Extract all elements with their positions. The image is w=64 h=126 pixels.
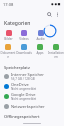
staticText: Audio: [36, 37, 45, 41]
staticText: Installationen: [48, 51, 64, 59]
button[interactable]: Installationen: [48, 44, 64, 59]
staticText: Nicht angemeldet: [11, 97, 37, 101]
staticText: Apps: [36, 51, 44, 55]
button[interactable]: Dokumente: [0, 44, 16, 59]
staticText: Interner Speicher: [11, 72, 44, 77]
button[interactable]: Downloads: [16, 44, 32, 55]
staticText: Dokumente: [0, 51, 16, 59]
staticText: Google Drive: [11, 92, 36, 97]
staticText: Netzwerkspeicher: [11, 104, 45, 109]
staticText: Offlinegespeichert: [4, 114, 40, 119]
button[interactable]: Bilder: [0, 30, 16, 41]
button[interactable]: Interner Speicher: [0, 71, 64, 81]
staticText: 56,7 GB / 128 GB: [11, 77, 35, 81]
staticText: Bilder: [4, 37, 13, 41]
button[interactable]: Search: [45, 10, 53, 18]
button[interactable]: OneDrive: [0, 81, 64, 91]
button[interactable]: More options: [53, 10, 61, 18]
staticText: Speicherplatz: [4, 65, 30, 70]
button[interactable]: Videos: [16, 30, 32, 41]
staticText: OneDrive: [11, 82, 29, 87]
button[interactable]: Netzwerkspeicher: [0, 101, 64, 111]
staticText: Videos: [19, 37, 29, 41]
button[interactable]: Audio: [32, 30, 48, 41]
staticText: Kategorien: [4, 20, 31, 27]
staticText: Downloads: [16, 51, 32, 55]
staticText: Nicht angemeldet: [11, 87, 37, 91]
staticText: 17:08: [3, 2, 14, 7]
button[interactable]: Google Drive: [0, 91, 64, 101]
staticText: ● ● ■: [51, 2, 61, 6]
button[interactable]: Apps: [32, 44, 48, 55]
